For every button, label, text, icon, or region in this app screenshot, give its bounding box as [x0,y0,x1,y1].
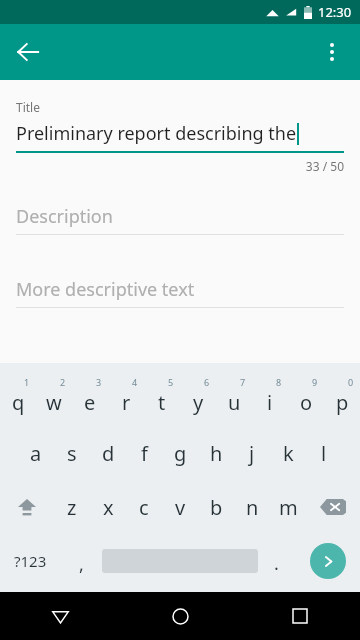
button[interactable]: y [180,381,216,417]
staticText: g [174,440,187,467]
button[interactable]: More options [308,28,356,76]
button[interactable]: More descriptive text [16,271,344,307]
button[interactable]: Home [120,592,240,640]
button[interactable]: j [234,435,270,471]
staticText: y [193,389,204,416]
staticText: k [283,440,294,467]
button[interactable]: b [198,489,234,525]
staticText: m [279,494,298,521]
staticText: q [12,389,25,416]
staticText: Title [16,99,40,115]
button[interactable]: Back [0,592,120,640]
staticText: Description [16,204,113,229]
button[interactable]: z [54,489,90,525]
button[interactable]: g [162,435,198,471]
staticText: 8 [276,376,282,388]
button[interactable]: k [270,435,306,471]
button[interactable]: t [144,381,180,417]
button[interactable]: s [54,435,90,471]
button[interactable]: Back [4,28,52,76]
button[interactable]: f [126,435,162,471]
button[interactable]: n [234,489,270,525]
button[interactable]: Description [16,198,344,234]
button[interactable]: i [252,381,288,417]
staticText: 33 / 50 [305,158,344,174]
staticText: z [67,494,77,521]
button[interactable]: c [126,489,162,525]
staticText: More descriptive text [16,277,195,302]
staticText: j [249,440,255,467]
staticText: 2 [60,376,66,388]
button[interactable]: , [61,541,102,581]
staticText: o [300,389,313,416]
button[interactable]: q [0,381,36,417]
button[interactable]: p [324,381,360,417]
staticText: Preliminary report describing the [16,121,297,146]
button[interactable]: x [90,489,126,525]
staticText: p [336,389,349,416]
staticText: w [46,389,62,416]
staticText: e [84,389,96,416]
staticText: r [122,389,131,416]
staticText: n [246,494,259,521]
button[interactable]: Backspace [306,489,360,525]
staticText: u [228,389,241,416]
button[interactable]: ?123 [0,541,61,581]
staticText: h [210,440,223,467]
staticText: c [139,494,149,521]
button[interactable]: Recents [240,592,360,640]
button[interactable]: u [216,381,252,417]
button[interactable]: e [72,381,108,417]
staticText: b [210,494,223,521]
button[interactable]: m [270,489,306,525]
staticText: 1 [24,376,30,388]
staticText: 12:30 [318,3,352,21]
staticText: t [158,389,166,416]
button[interactable]: Shift [0,489,54,525]
button[interactable]: r [108,381,144,417]
button[interactable]: d [90,435,126,471]
button[interactable]: o [288,381,324,417]
staticText: ?123 [14,551,47,571]
staticText: s [67,440,77,467]
staticText: 5 [168,376,174,388]
staticText: , [79,552,84,577]
staticText: f [141,440,148,467]
staticText: 0 [348,376,354,388]
staticText: . [274,551,279,576]
staticText: 9 [312,376,318,388]
staticText: a [30,440,42,467]
staticText: 3 [96,376,102,388]
staticText: 4 [132,376,138,388]
button[interactable]: . [258,541,295,581]
staticText: i [267,389,273,416]
button[interactable]: Enter [310,543,346,579]
button[interactable]: a [18,435,54,471]
staticText: d [102,440,115,467]
staticText: 7 [240,376,246,388]
staticText: x [103,494,114,521]
staticText: 6 [204,376,210,388]
staticText: v [175,494,186,521]
button[interactable]: w [36,381,72,417]
button[interactable]: l [306,435,342,471]
button[interactable]: h [198,435,234,471]
staticText: l [321,440,327,467]
button[interactable]: v [162,489,198,525]
